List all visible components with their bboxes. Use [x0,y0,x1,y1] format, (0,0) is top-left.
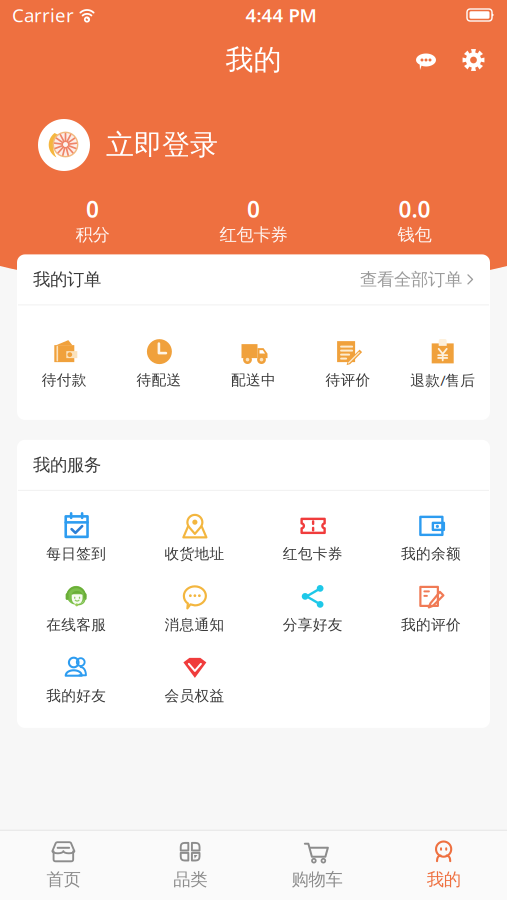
button[interactable]: 待配送 [112,339,206,389]
staticText: 退款/售后 [410,370,475,390]
button[interactable]: 我的 [380,839,507,890]
staticText: 红包卡券 [219,224,287,245]
staticText: 钱包 [397,224,431,245]
staticText: Carrier [12,3,74,27]
button[interactable]: 我的评价 [372,584,490,634]
button[interactable]: 收货地址 [135,513,253,563]
staticText: 4:44 PM [245,3,316,27]
button[interactable]: 0 [173,194,334,245]
staticText: 0.0 [398,194,430,224]
staticText: 我的评价 [401,616,461,634]
button[interactable]: Messages [411,44,442,75]
staticText: 红包卡券 [283,545,343,563]
staticText: 每日签到 [46,545,106,563]
staticText: 在线客服 [46,616,106,634]
staticText: 我的订单 [33,269,101,290]
button[interactable]: 品类 [127,839,254,890]
button[interactable]: 首页 [0,839,127,890]
staticText: 0 [247,194,260,224]
staticText: 待配送 [136,371,181,389]
button[interactable]: 购物车 [253,839,380,890]
staticText: 分享好友 [283,616,343,634]
staticText: 我的服务 [33,454,101,475]
staticText: 会员权益 [164,687,224,705]
staticText: 我的好友 [46,687,106,705]
button[interactable]: 0.0 [334,194,495,245]
button[interactable]: 我的好友 [17,655,135,705]
button[interactable]: 我的余额 [372,513,490,563]
button[interactable]: 0 [12,194,173,245]
staticText: 收货地址 [164,545,224,563]
staticText: 积分 [75,224,109,245]
staticText: 待付款 [42,371,87,389]
staticText: 我的余额 [401,545,461,563]
staticText: 查看全部订单 [360,269,462,290]
button[interactable]: 退款/售后 [395,338,490,390]
staticText: 立即登录 [106,128,218,162]
staticText: 我的 [225,43,281,77]
staticText: 购物车 [291,869,342,890]
staticText: 首页 [46,869,80,890]
staticText: 我的 [427,869,461,890]
button[interactable]: Settings [458,44,489,75]
button[interactable]: 待评价 [301,339,395,389]
button[interactable]: 消息通知 [135,584,253,634]
button[interactable]: 红包卡券 [253,513,372,563]
staticText: 待评价 [326,371,371,389]
button[interactable]: 待付款 [17,339,112,389]
staticText: 0 [86,194,99,224]
button[interactable]: 会员权益 [135,655,253,705]
button[interactable]: 配送中 [206,339,301,389]
staticText: 品类 [173,869,207,890]
button[interactable]: 我的订单 [17,254,490,304]
button[interactable]: 每日签到 [17,513,135,563]
staticText: 配送中 [231,371,276,389]
button[interactable]: 在线客服 [17,584,135,634]
button[interactable]: 分享好友 [253,584,372,634]
staticText: 消息通知 [164,616,224,634]
button[interactable]: Avatar [38,119,90,171]
button[interactable]: 立即登录 [106,128,218,162]
